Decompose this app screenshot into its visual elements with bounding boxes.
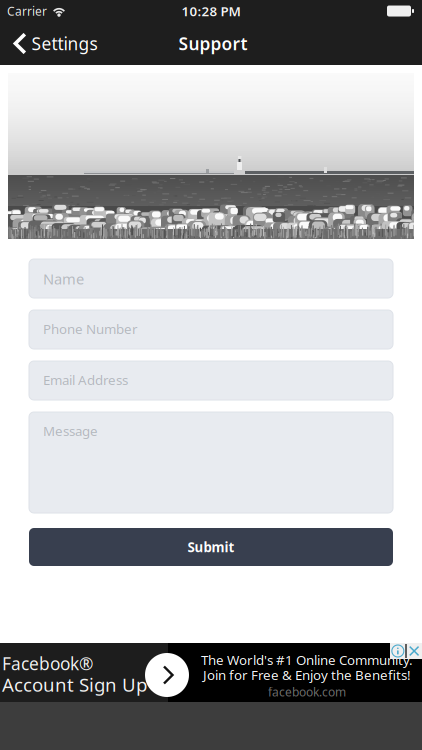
staticText: Facebook® <box>2 652 93 675</box>
staticText: Support <box>178 32 247 55</box>
staticText: Email Address <box>43 371 128 389</box>
staticText: facebook.com <box>268 684 346 700</box>
staticText: The World's #1 Online Community. <box>201 651 413 669</box>
staticText: Phone Number <box>43 320 138 338</box>
staticText: Message <box>43 422 98 440</box>
button[interactable]: Settings <box>0 22 107 65</box>
staticText: Submit <box>187 538 234 556</box>
staticText: Join for Free & Enjoy the Benefits! <box>203 666 411 684</box>
button[interactable]: Submit <box>29 528 393 566</box>
staticText: Settings <box>31 32 97 55</box>
staticText: Carrier <box>7 3 47 19</box>
staticText: Account Sign Up <box>2 672 147 697</box>
staticText: 10:28 PM <box>181 2 240 20</box>
staticText: Name <box>43 269 84 288</box>
